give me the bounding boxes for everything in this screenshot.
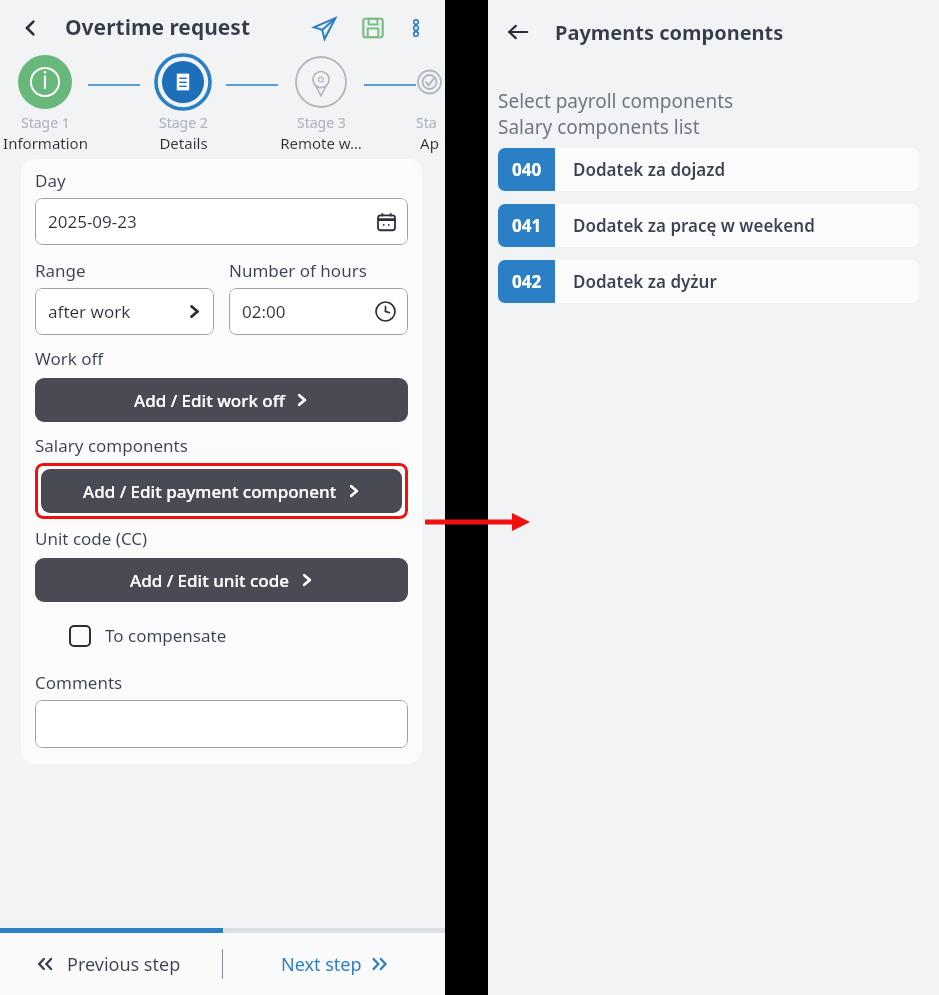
button[interactable]: 040 [498, 148, 919, 191]
staticText: after work [48, 300, 131, 323]
staticText: Salary components [35, 434, 188, 457]
staticText: Number of hours [229, 259, 367, 282]
staticText: Day [35, 169, 66, 192]
button[interactable]: Stage 3 [278, 55, 364, 153]
button[interactable]: To compensate [35, 622, 408, 649]
button[interactable]: Next step [223, 933, 445, 995]
staticText: Previous step [67, 952, 181, 977]
button[interactable]: Stage 4 [416, 55, 443, 153]
button[interactable]: 041 [498, 204, 919, 247]
staticText: Range [35, 259, 86, 282]
button[interactable]: Stage 2 [140, 55, 226, 153]
button[interactable]: 042 [498, 260, 919, 303]
button[interactable]: Send [305, 9, 343, 47]
button[interactable]: Add / Edit payment component [41, 469, 402, 513]
button[interactable]: More options [399, 11, 433, 45]
staticText: Comments [35, 671, 123, 694]
staticText: Select payroll components [498, 88, 734, 114]
button[interactable]: 02:00 [229, 288, 408, 335]
staticText: Details [159, 133, 208, 153]
button[interactable]: Add / Edit unit code [35, 558, 408, 602]
staticText: Salary components list [498, 114, 700, 140]
staticText: 040 [512, 158, 542, 181]
button[interactable]: Previous step [0, 933, 222, 995]
staticText: Information [3, 133, 88, 153]
button[interactable]: Stage 1 [2, 55, 88, 153]
staticText: Next step [281, 952, 362, 977]
staticText: Add / Edit work off [134, 389, 285, 412]
staticText: Unit code (CC) [35, 527, 148, 550]
staticText: 042 [512, 270, 542, 293]
staticText: To compensate [105, 624, 227, 647]
button[interactable]: Back [500, 14, 536, 50]
staticText: 041 [512, 214, 542, 237]
button[interactable]: Add / Edit work off [35, 378, 408, 422]
staticText: 02:00 [242, 300, 286, 323]
staticText: Work off [35, 347, 104, 370]
staticText: Payments components [555, 19, 784, 46]
staticText: Stage 3 [297, 113, 346, 132]
staticText: Dodatek za pracę w weekend [573, 214, 815, 237]
staticText: Approval [416, 133, 443, 153]
staticText: Remote w… [280, 133, 362, 153]
staticText: Stage 4 [416, 113, 443, 132]
staticText: Dodatek za dyżur [573, 270, 717, 293]
staticText: Add / Edit payment component [83, 480, 337, 503]
staticText: Stage 1 [21, 113, 70, 132]
button[interactable] [35, 700, 408, 748]
button[interactable]: Back [14, 11, 48, 45]
staticText: Dodatek za dojazd [573, 158, 726, 181]
button[interactable]: Save [354, 9, 392, 47]
staticText: Overtime request [65, 13, 251, 42]
button[interactable]: 2025-09-23 [35, 198, 408, 245]
staticText: 2025-09-23 [48, 210, 137, 233]
staticText: Add / Edit unit code [130, 569, 290, 592]
button[interactable]: after work [35, 288, 214, 335]
staticText: Stage 2 [159, 113, 208, 132]
